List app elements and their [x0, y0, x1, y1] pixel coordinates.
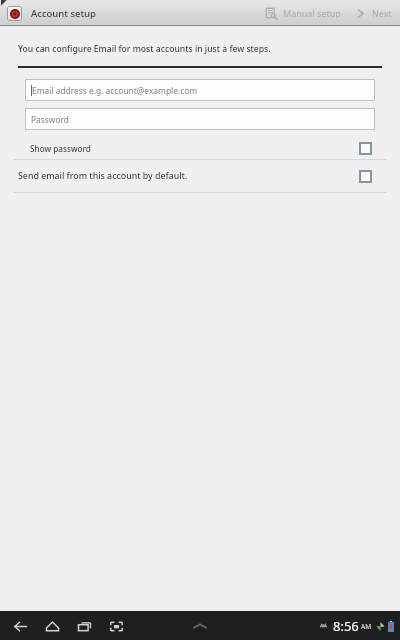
button[interactable]: Status: 8:56 AM [319, 617, 394, 635]
staticText: Manual setup [283, 7, 341, 19]
button[interactable]: Notifications [187, 616, 213, 636]
staticText: Show password [30, 143, 359, 154]
button[interactable]: Screenshot [104, 614, 128, 638]
button[interactable]: Send email from this account by default. [0, 160, 400, 192]
button[interactable]: Show password [0, 138, 400, 159]
staticText: AM [361, 622, 372, 631]
button[interactable]: Email address e.g. account@example.com [25, 79, 375, 101]
button[interactable]: Password [25, 108, 375, 130]
button[interactable]: Account setup [7, 6, 102, 21]
staticText: Account setup [31, 7, 96, 20]
button[interactable]: Next [348, 0, 400, 26]
staticText: Password [31, 114, 69, 125]
button[interactable]: Back [8, 614, 32, 638]
button[interactable]: Manual setup [258, 0, 348, 26]
staticText: Email address e.g. account@example.com [32, 85, 198, 96]
staticText: 8:56 [333, 617, 359, 635]
staticText: Send email from this account by default. [18, 170, 359, 182]
staticText: Next [372, 7, 392, 19]
staticText: You can configure Email for most account… [18, 43, 271, 55]
button[interactable]: Home [40, 614, 64, 638]
button[interactable]: Recent apps [72, 614, 96, 638]
